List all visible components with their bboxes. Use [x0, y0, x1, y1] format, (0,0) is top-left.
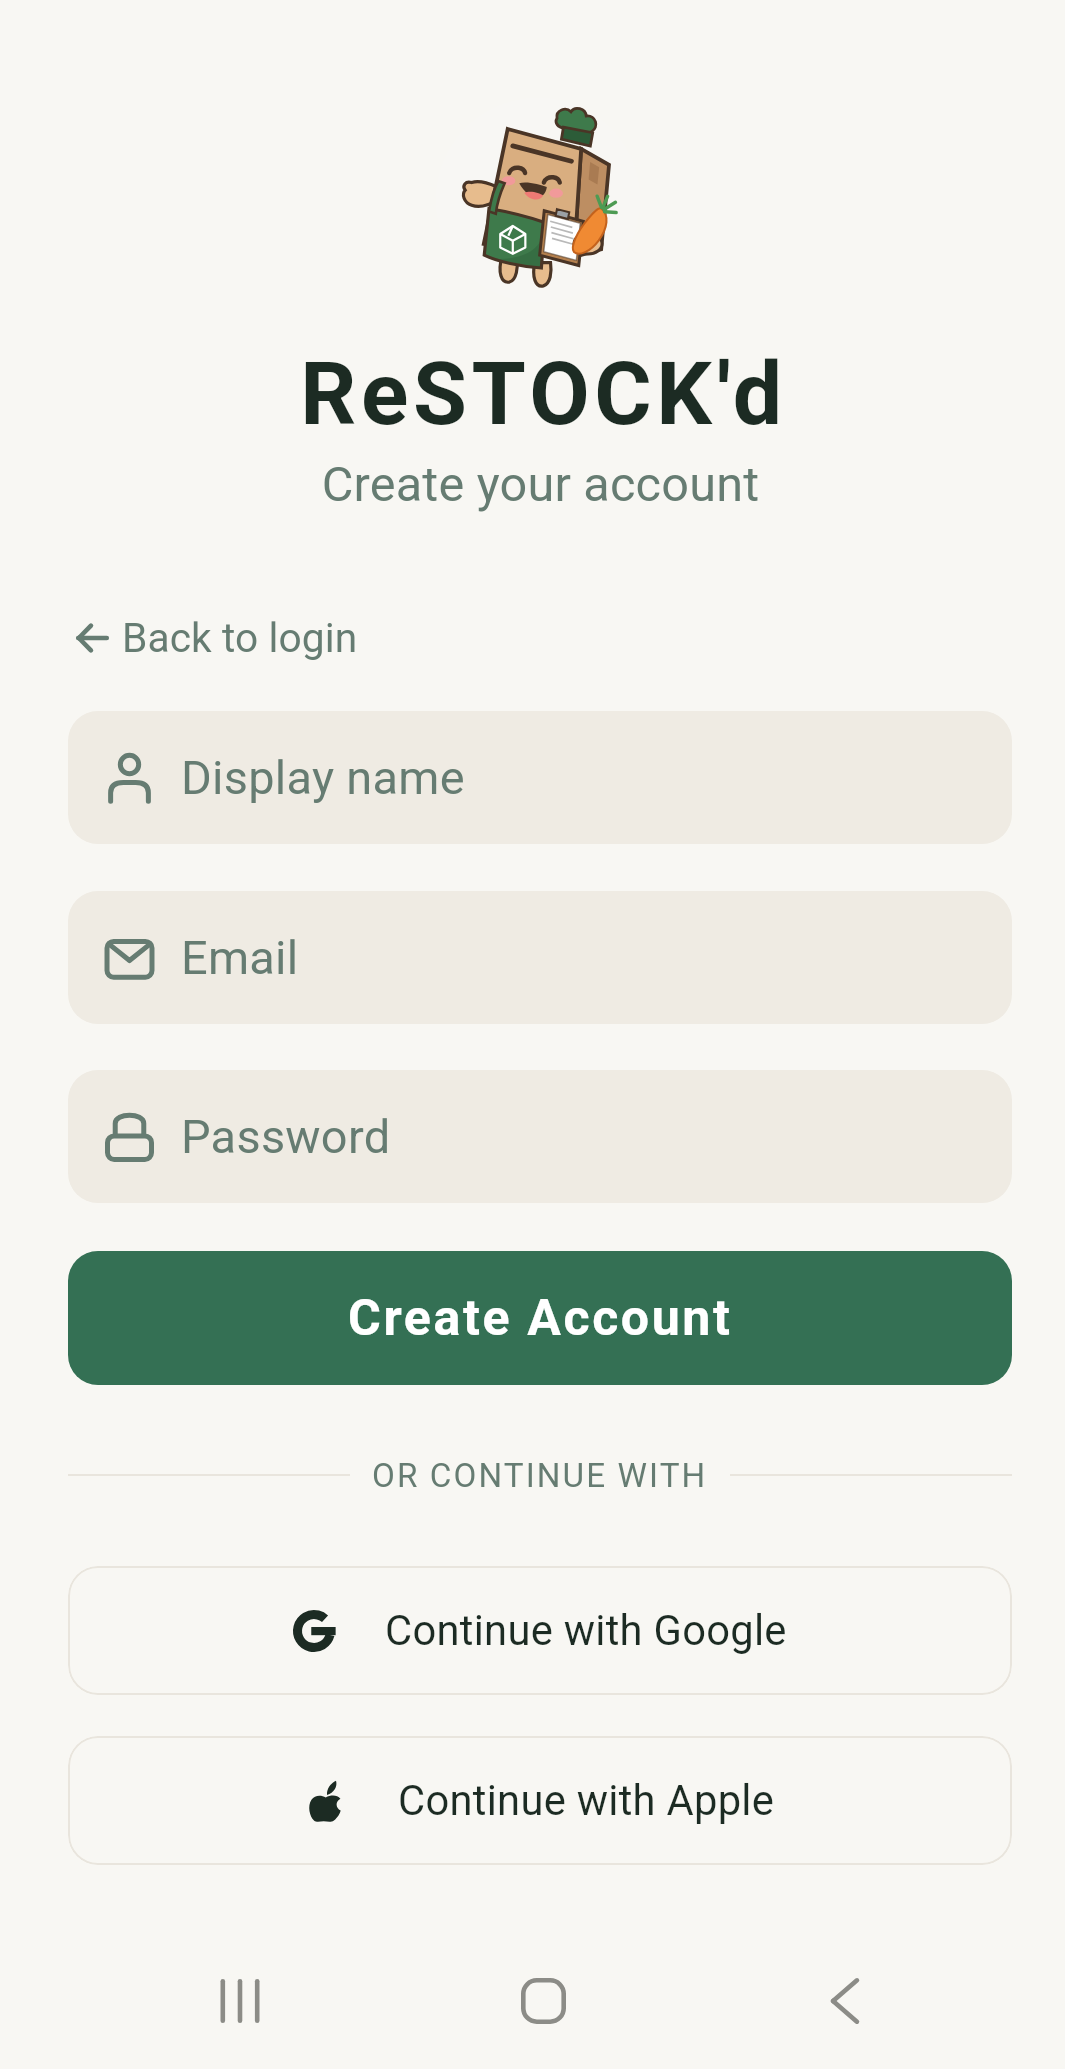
staticText: Password	[181, 1109, 391, 1164]
staticText: Continue with Google	[385, 1606, 787, 1655]
button[interactable]: Back	[785, 1941, 905, 2061]
staticText: ReSTOCK'd	[11, 343, 1065, 446]
button[interactable]: Home	[483, 1941, 603, 2061]
staticText: Back to login	[122, 614, 358, 662]
staticText: Create Account	[348, 1289, 733, 1348]
staticText: Continue with Apple	[398, 1776, 775, 1825]
button[interactable]: Display name	[68, 711, 1012, 844]
button[interactable]: Create Account	[68, 1251, 1012, 1385]
button[interactable]: Recent apps	[180, 1941, 300, 2061]
staticText: OR CONTINUE WITH	[372, 1456, 708, 1495]
staticText: Email	[181, 930, 299, 985]
button[interactable]: Back to login	[69, 606, 368, 670]
button[interactable]: Password	[68, 1070, 1012, 1203]
button[interactable]: Continue with Apple	[68, 1736, 1012, 1865]
button[interactable]: Email	[68, 891, 1012, 1024]
button[interactable]: Continue with Google	[68, 1566, 1012, 1695]
staticText: Create your account	[8, 456, 1065, 513]
staticText: Display name	[181, 750, 465, 805]
